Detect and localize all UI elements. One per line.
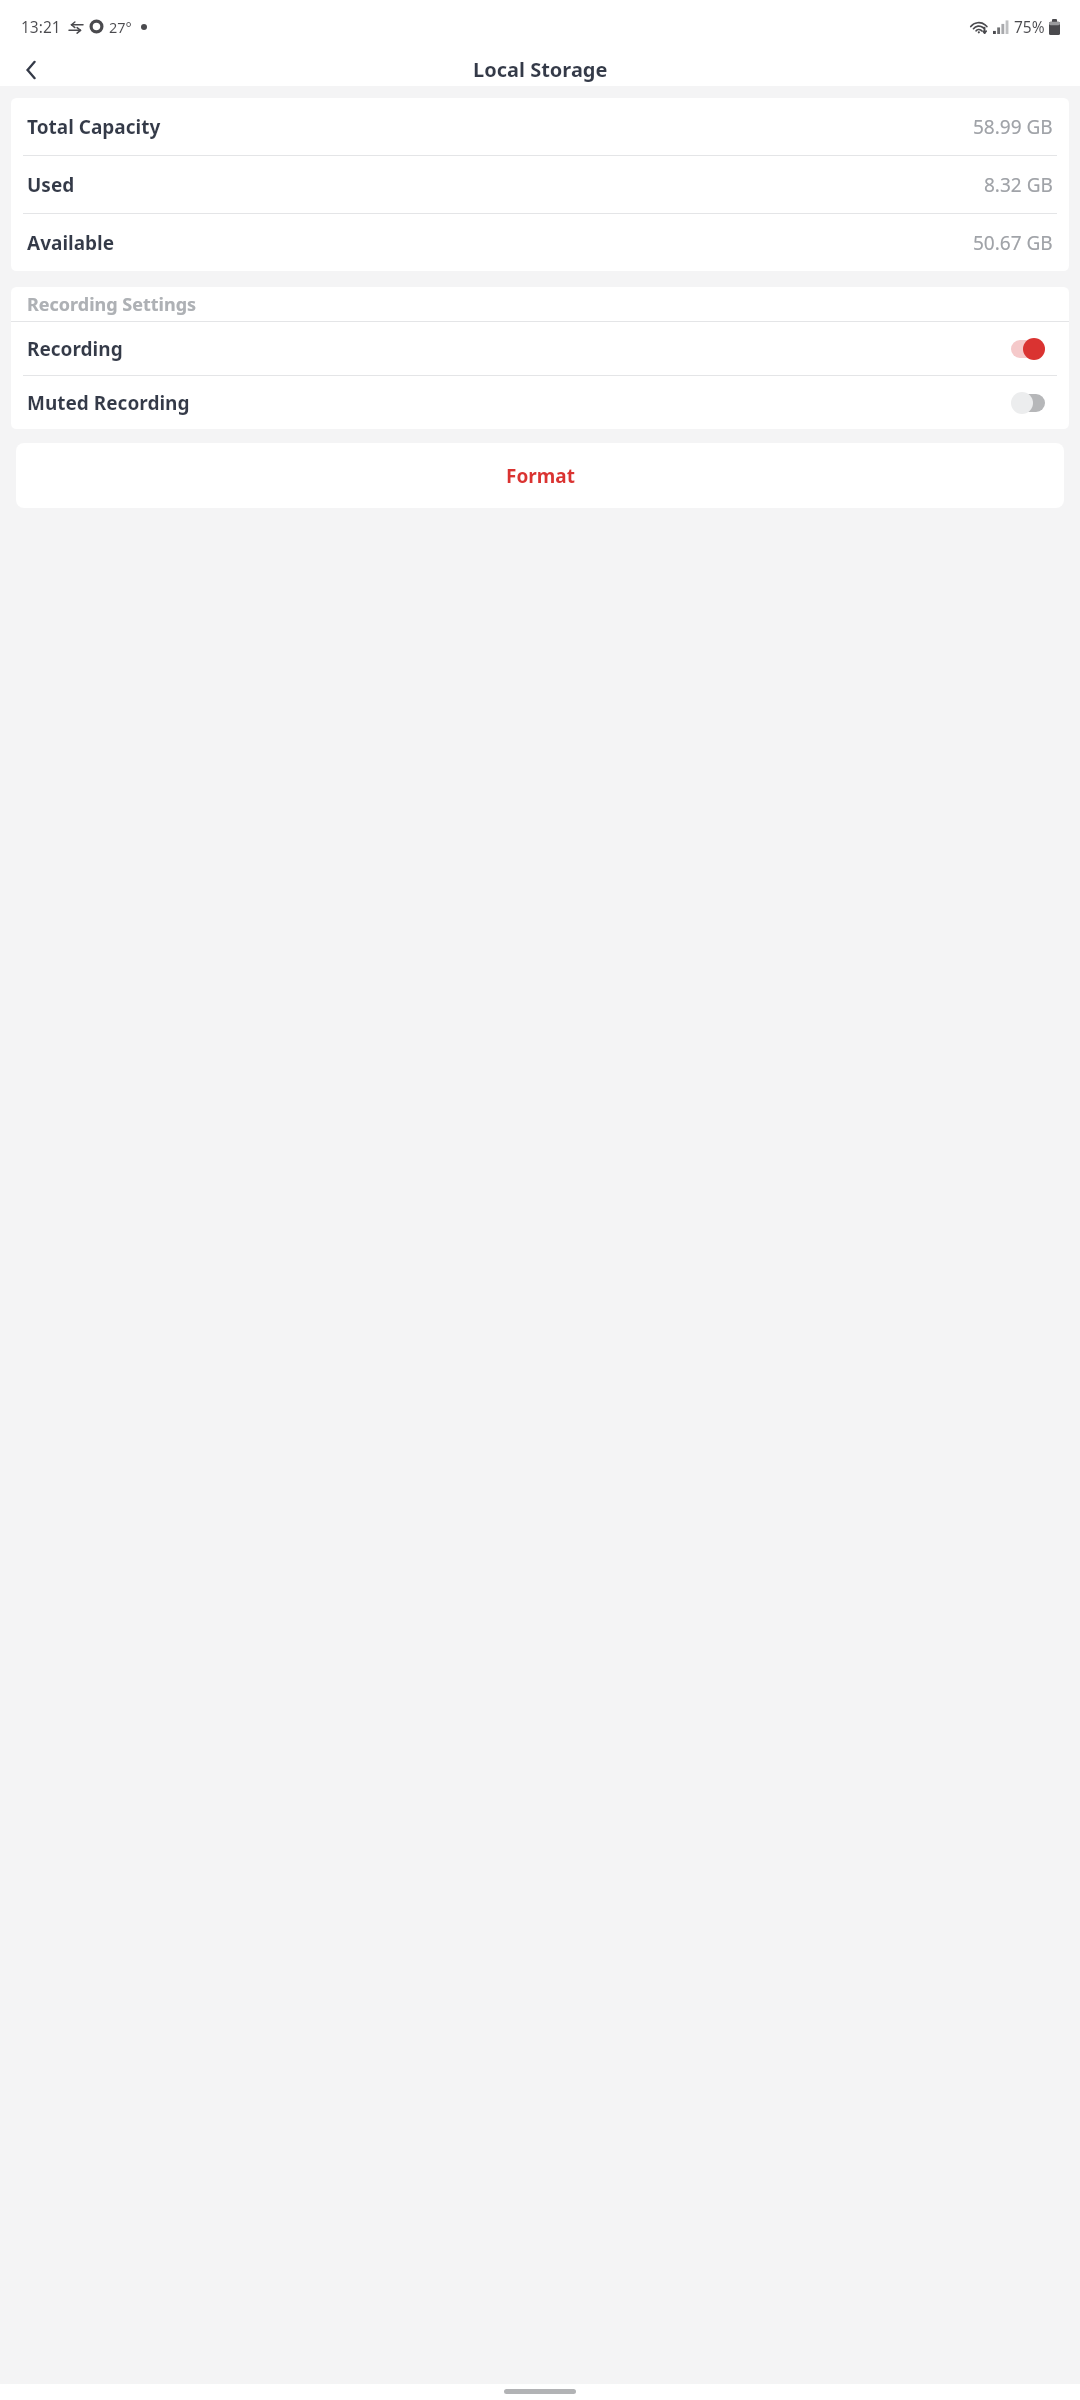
staticText: 50.67 GB (973, 230, 1053, 256)
button[interactable]: Recording (11, 322, 1069, 375)
button[interactable]: Back (8, 53, 56, 86)
staticText: 75% (1014, 16, 1045, 37)
button[interactable]: Off (1011, 392, 1045, 414)
staticText: 13:21 (21, 16, 61, 37)
staticText: Local Storage (473, 56, 608, 83)
staticText: Recording Settings (27, 292, 197, 317)
staticText: 27° (109, 17, 132, 37)
button[interactable]: On (1011, 338, 1045, 360)
staticText: Available (27, 230, 115, 256)
button[interactable]: Total Capacity (11, 98, 1069, 155)
staticText: Total Capacity (27, 114, 161, 140)
staticText: Format (506, 463, 575, 489)
button[interactable]: Available (11, 214, 1069, 271)
staticText: Muted Recording (27, 390, 190, 416)
staticText: Used (27, 172, 75, 198)
staticText: 58.99 GB (973, 114, 1053, 140)
button[interactable]: Muted Recording (11, 376, 1069, 429)
staticText: 8.32 GB (984, 172, 1053, 198)
staticText: Recording (27, 336, 123, 362)
button[interactable]: Used (11, 156, 1069, 213)
button[interactable]: Format (16, 443, 1064, 508)
